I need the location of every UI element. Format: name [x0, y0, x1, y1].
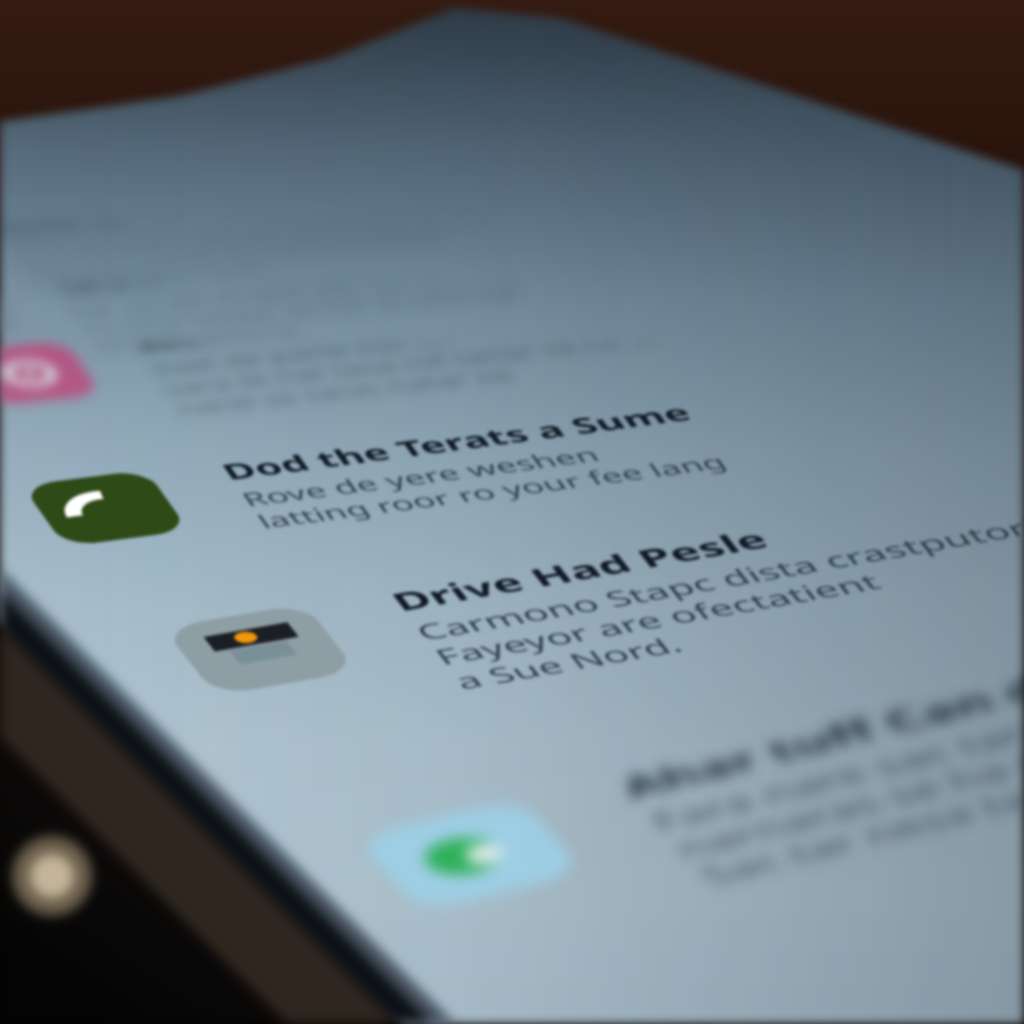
staticText: Vaet de parte toe tasur se roof thes are… — [139, 238, 863, 469]
staticText: Tarase ne sa Haroten — [46, 214, 415, 331]
button[interactable]: Drive Had Pesle — [117, 456, 1024, 733]
staticText: Saur Fasn Tg nare sac — [124, 262, 534, 385]
staticText: Fara nare sac taren tha dase narnaras se… — [633, 648, 1024, 897]
button[interactable]: Ahar tuff Can dinen 5 te — [290, 589, 1024, 959]
staticText: Tose ne rasa ta harnet sa rof the nar ta… — [0, 145, 584, 350]
button[interactable]: Naret sa Fasen tar ne — [0, 97, 581, 371]
staticText: Rove de yere weshen latting roor ro your… — [233, 405, 735, 556]
staticText: Ahar tuff Can dinen 5 te — [600, 607, 1024, 808]
staticText: Sar ne tas ro tane sac ha nerot se raen … — [59, 203, 655, 406]
staticText: Carmono Stapc dista crastputorife Fayeyo… — [408, 502, 1024, 699]
button[interactable]: Dod the Terats a Sume — [0, 354, 729, 585]
staticText: Naret sa Fasen tar ne — [0, 162, 326, 274]
button[interactable]: Tarase ne sa Haroten — [0, 153, 651, 429]
staticText: Drive Had Pesle — [382, 520, 777, 620]
button[interactable]: Saur Fasn Tg nare sac — [0, 188, 858, 494]
staticText: Dod the Terats a Sume — [212, 375, 700, 508]
